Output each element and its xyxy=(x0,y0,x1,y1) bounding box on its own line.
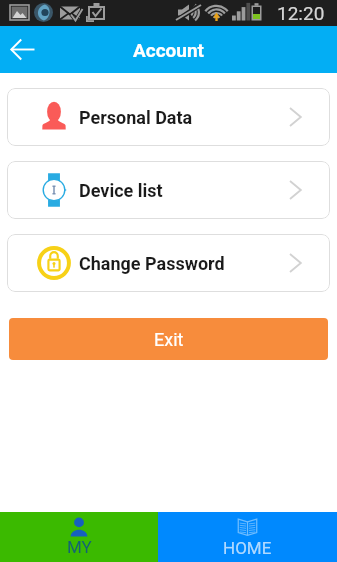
button[interactable]: Personal Data xyxy=(7,88,330,146)
button[interactable]: HOME xyxy=(158,512,337,562)
staticText: 12:20 xyxy=(277,2,325,24)
staticText: Account xyxy=(133,39,205,61)
staticText: Device list xyxy=(79,180,163,201)
staticText: MY xyxy=(67,537,92,557)
button[interactable]: MY xyxy=(0,512,158,562)
staticText: Change Password xyxy=(79,253,225,274)
staticText: Personal Data xyxy=(79,107,193,128)
button[interactable]: Change Password xyxy=(7,234,330,292)
button[interactable]: Exit xyxy=(9,318,328,360)
staticText: HOME xyxy=(223,538,272,558)
staticText: Exit xyxy=(154,329,184,350)
button[interactable]: Back xyxy=(0,26,44,73)
button[interactable]: Device list xyxy=(7,161,330,219)
